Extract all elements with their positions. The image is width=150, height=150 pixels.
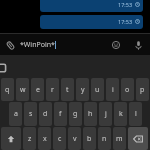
staticText: j	[105, 109, 107, 119]
button[interactable]: y	[76, 78, 89, 101]
button[interactable]: h	[84, 102, 97, 126]
button[interactable]: e	[31, 78, 44, 101]
button[interactable]: Open sticker keyboard	[0, 63, 10, 73]
button[interactable]: d	[39, 102, 52, 126]
button[interactable]: k	[114, 102, 127, 126]
staticText: 17:53	[118, 1, 133, 8]
staticText: *WinPoin*	[20, 40, 55, 50]
staticText: n	[102, 134, 107, 144]
button[interactable]: r	[46, 78, 59, 101]
button[interactable]: Attach file	[3, 38, 17, 52]
staticText: h	[88, 109, 93, 119]
staticText: a	[14, 109, 18, 119]
button[interactable]: Voice message	[131, 38, 145, 52]
button[interactable]: p	[136, 78, 149, 101]
button[interactable]: b	[83, 127, 96, 150]
staticText: l	[135, 109, 137, 119]
button[interactable]: a	[9, 102, 22, 126]
staticText: d	[43, 109, 48, 119]
staticText: b	[87, 134, 92, 144]
button[interactable]: f	[54, 102, 67, 126]
button[interactable]: g	[69, 102, 82, 126]
button[interactable]: n	[98, 127, 111, 150]
button[interactable]: s	[24, 102, 37, 126]
staticText: k	[119, 109, 123, 119]
button[interactable]: z	[23, 127, 36, 150]
button[interactable]: 17:53	[40, 15, 143, 29]
button[interactable]: i	[106, 78, 119, 101]
staticText: p	[140, 85, 145, 95]
button[interactable]: Emoji	[109, 38, 123, 52]
staticText: f	[59, 109, 62, 119]
button[interactable]: c	[53, 127, 66, 150]
button[interactable]: q	[1, 78, 14, 101]
staticText: t	[66, 85, 69, 95]
button[interactable]: t	[61, 78, 74, 101]
staticText: r	[51, 85, 54, 95]
button[interactable]: v	[68, 127, 81, 150]
staticText: z	[28, 134, 32, 144]
button[interactable]: j	[99, 102, 112, 126]
staticText: g	[73, 109, 78, 119]
staticText: m	[116, 134, 123, 144]
staticText: x	[43, 134, 47, 144]
staticText: c	[58, 134, 62, 144]
button[interactable]	[128, 127, 148, 150]
staticText: e	[36, 85, 40, 95]
staticText: u	[95, 85, 100, 95]
staticText: q	[5, 85, 10, 95]
staticText: y	[81, 85, 85, 95]
staticText: w	[20, 85, 26, 95]
button[interactable]: x	[38, 127, 51, 150]
button[interactable]: l	[129, 102, 142, 126]
staticText: v	[73, 134, 77, 144]
button[interactable]: u	[91, 78, 104, 101]
button[interactable]: m	[113, 127, 126, 150]
button[interactable]: w	[16, 78, 29, 101]
button[interactable]	[1, 127, 21, 150]
staticText: o	[125, 85, 130, 95]
button[interactable]: o	[121, 78, 134, 101]
button[interactable]: 17:53	[40, 0, 143, 12]
staticText: i	[112, 85, 114, 95]
staticText: 17:53	[118, 18, 133, 25]
staticText: s	[29, 109, 33, 119]
